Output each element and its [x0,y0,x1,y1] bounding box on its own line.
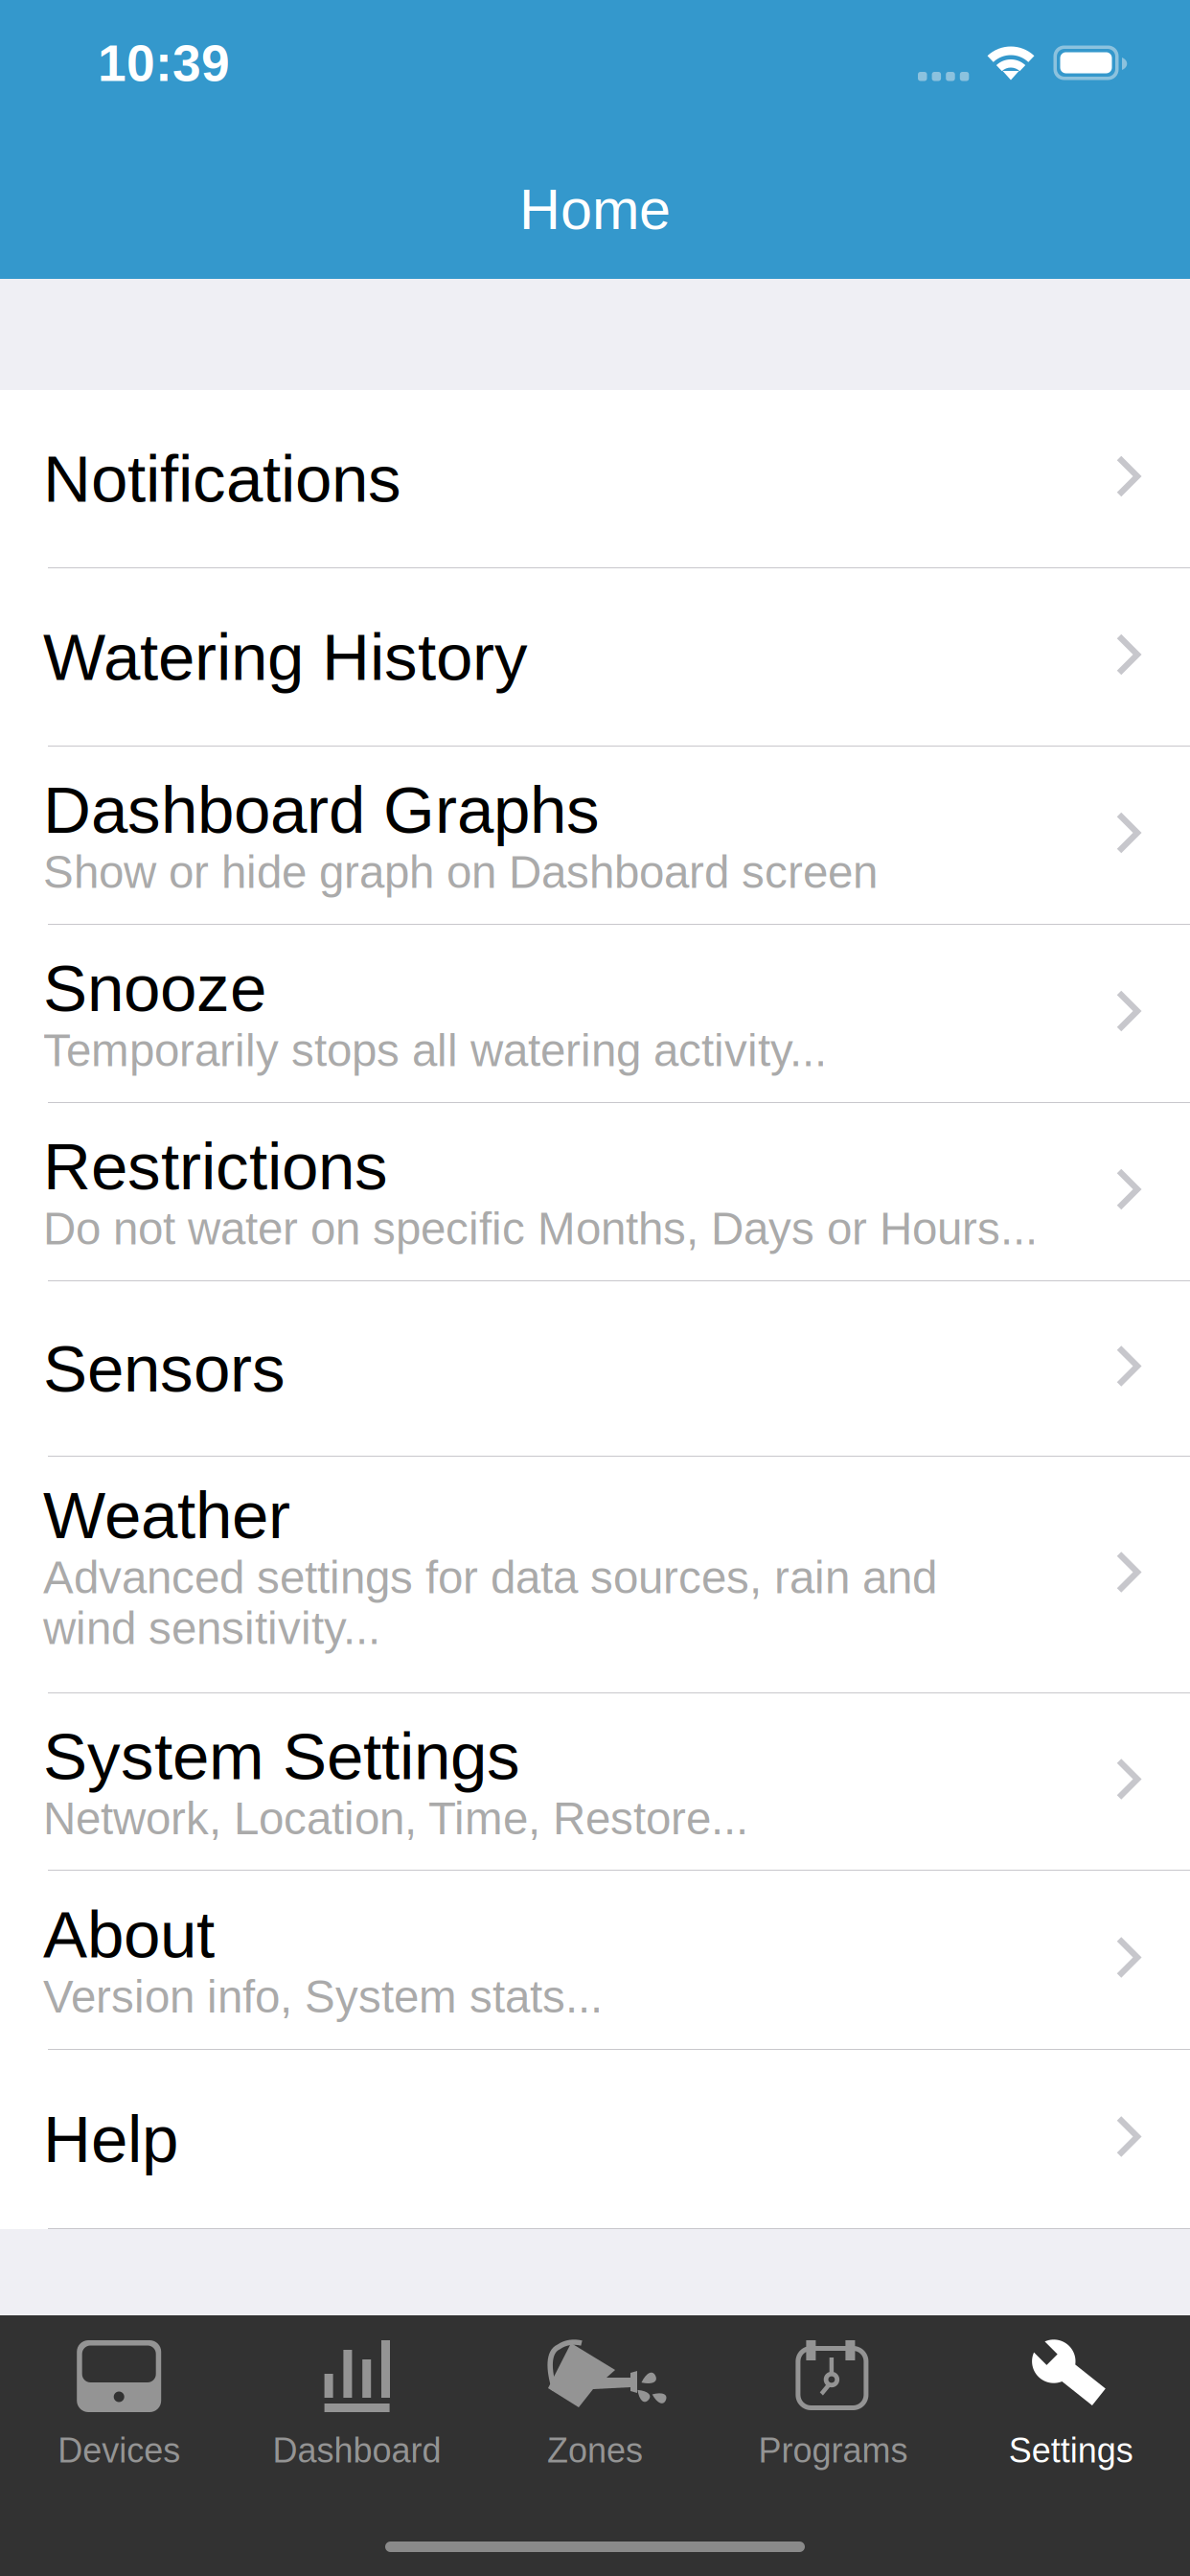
button[interactable]: Devices [0,2340,238,2513]
button[interactable]: About [0,1871,1190,2050]
staticText: Home [519,178,671,241]
button[interactable]: Dashboard [238,2340,476,2513]
staticText: Help [43,2102,178,2176]
staticText: Version info, System stats... [43,1971,603,2022]
staticText: About [43,1897,215,1971]
staticText: Settings [1009,2431,1133,2470]
staticText: Sensors [43,1332,286,1405]
staticText: Dashboard [273,2431,441,2470]
staticText: Advanced settings for data sources, rain… [43,1552,937,1654]
button[interactable]: Sensors [0,1281,1190,1457]
staticText: Snooze [43,951,266,1025]
staticText: Devices [58,2431,180,2470]
staticText: Notifications [43,442,401,516]
staticText: Show or hide graph on Dashboard screen [43,847,878,898]
staticText: Network, Location, Time, Restore... [43,1793,748,1844]
staticText: Temporarily stops all watering activity.… [43,1025,827,1076]
button[interactable]: Restrictions [0,1103,1190,1281]
staticText: Programs [758,2431,908,2470]
button[interactable]: Snooze [0,925,1190,1103]
button[interactable]: Dashboard Graphs [0,747,1190,925]
staticText: System Settings [43,1719,520,1793]
staticText: Watering History [43,620,528,694]
staticText: Restrictions [43,1129,388,1203]
button[interactable]: System Settings [0,1693,1190,1871]
staticText: Weather [43,1478,290,1552]
button[interactable]: Notifications [0,390,1190,568]
button[interactable]: Programs [714,2340,952,2513]
button[interactable]: Zones [476,2340,714,2513]
button[interactable]: Settings [952,2340,1190,2513]
button[interactable]: Weather [0,1457,1190,1693]
button[interactable]: Help [0,2050,1190,2229]
button[interactable]: Watering History [0,568,1190,747]
staticText: Do not water on specific Months, Days or… [43,1203,1038,1254]
staticText: Dashboard Graphs [43,773,600,847]
staticText: Zones [547,2431,643,2470]
staticText: 10:39 [98,35,230,92]
